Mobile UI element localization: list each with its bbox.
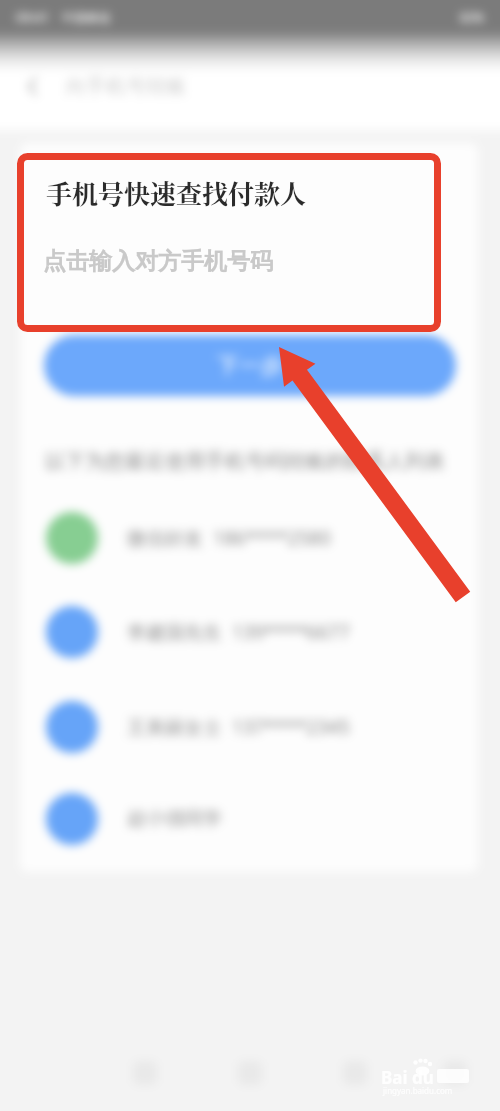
staticText: 向手机号转账 — [66, 74, 186, 99]
staticText: 中国移动 — [62, 10, 110, 25]
staticText: 赵小强同学 — [127, 807, 222, 831]
button[interactable]: Navigation item 3 — [333, 1051, 377, 1095]
staticText: 以下为您最近使用手机号码转账的联系人列表 — [45, 449, 445, 474]
staticText: Bai du — [381, 1066, 434, 1089]
staticText: 09:41 — [16, 8, 50, 26]
staticText: 王美丽女士 137****2345 — [127, 714, 350, 740]
button[interactable]: 李建国先生 139****6677 — [20, 590, 478, 674]
staticText: 手机号快速查找付款人 — [46, 174, 307, 211]
staticText: 微信好友 186****2580 — [127, 525, 331, 551]
staticText: 点击输入对方手机号码 — [43, 247, 273, 276]
staticText: 82% — [460, 9, 484, 25]
button[interactable]: Navigation item 4 — [433, 1051, 477, 1095]
staticText: 李建国先生 139****6677 — [127, 619, 350, 645]
staticText: 下一步 — [217, 352, 283, 380]
staticText: jingyan.baidu.com — [383, 1085, 453, 1096]
button[interactable]: 王美丽女士 137****2345 — [20, 685, 478, 769]
staticText: 手机号快速查找付款人 — [46, 174, 307, 211]
button[interactable]: Navigation item 1 — [123, 1051, 167, 1095]
button[interactable]: Back — [18, 71, 48, 101]
button[interactable]: 赵小强同学 — [20, 777, 478, 861]
button[interactable]: 微信好友 186****2580 — [20, 496, 478, 580]
staticText: 点击输入对方手机号码 — [43, 247, 273, 276]
button[interactable]: 下一步 — [44, 335, 456, 396]
button[interactable]: Navigation item 2 — [228, 1051, 272, 1095]
